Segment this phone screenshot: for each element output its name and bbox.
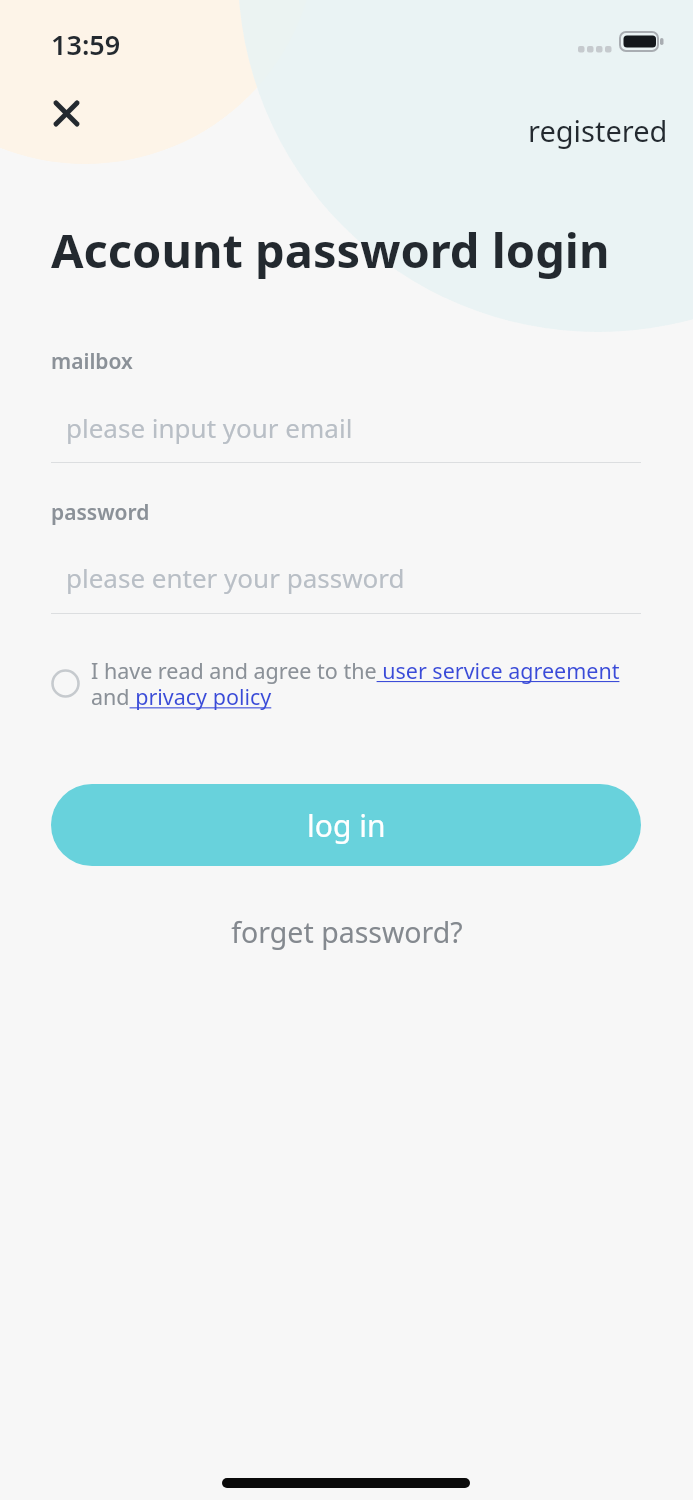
staticText: I have read and agree to the user servic…	[91, 656, 651, 712]
staticText: mailbox	[51, 347, 133, 376]
button[interactable]: log in	[51, 784, 641, 866]
staticText: password	[51, 498, 150, 527]
staticText: 13:59	[51, 26, 121, 63]
button[interactable]: I have read and agree to the user servic…	[45, 650, 645, 720]
button[interactable]: registered	[520, 105, 680, 155]
button[interactable]: forget password?	[0, 905, 693, 960]
staticText: forget password?	[231, 913, 463, 952]
staticText: please input your email	[66, 410, 353, 445]
staticText: log in	[307, 805, 386, 846]
staticText: registered	[528, 111, 668, 150]
staticText: Account password login	[51, 218, 610, 282]
button[interactable]	[41, 88, 92, 139]
staticText: please enter your password	[66, 560, 405, 595]
